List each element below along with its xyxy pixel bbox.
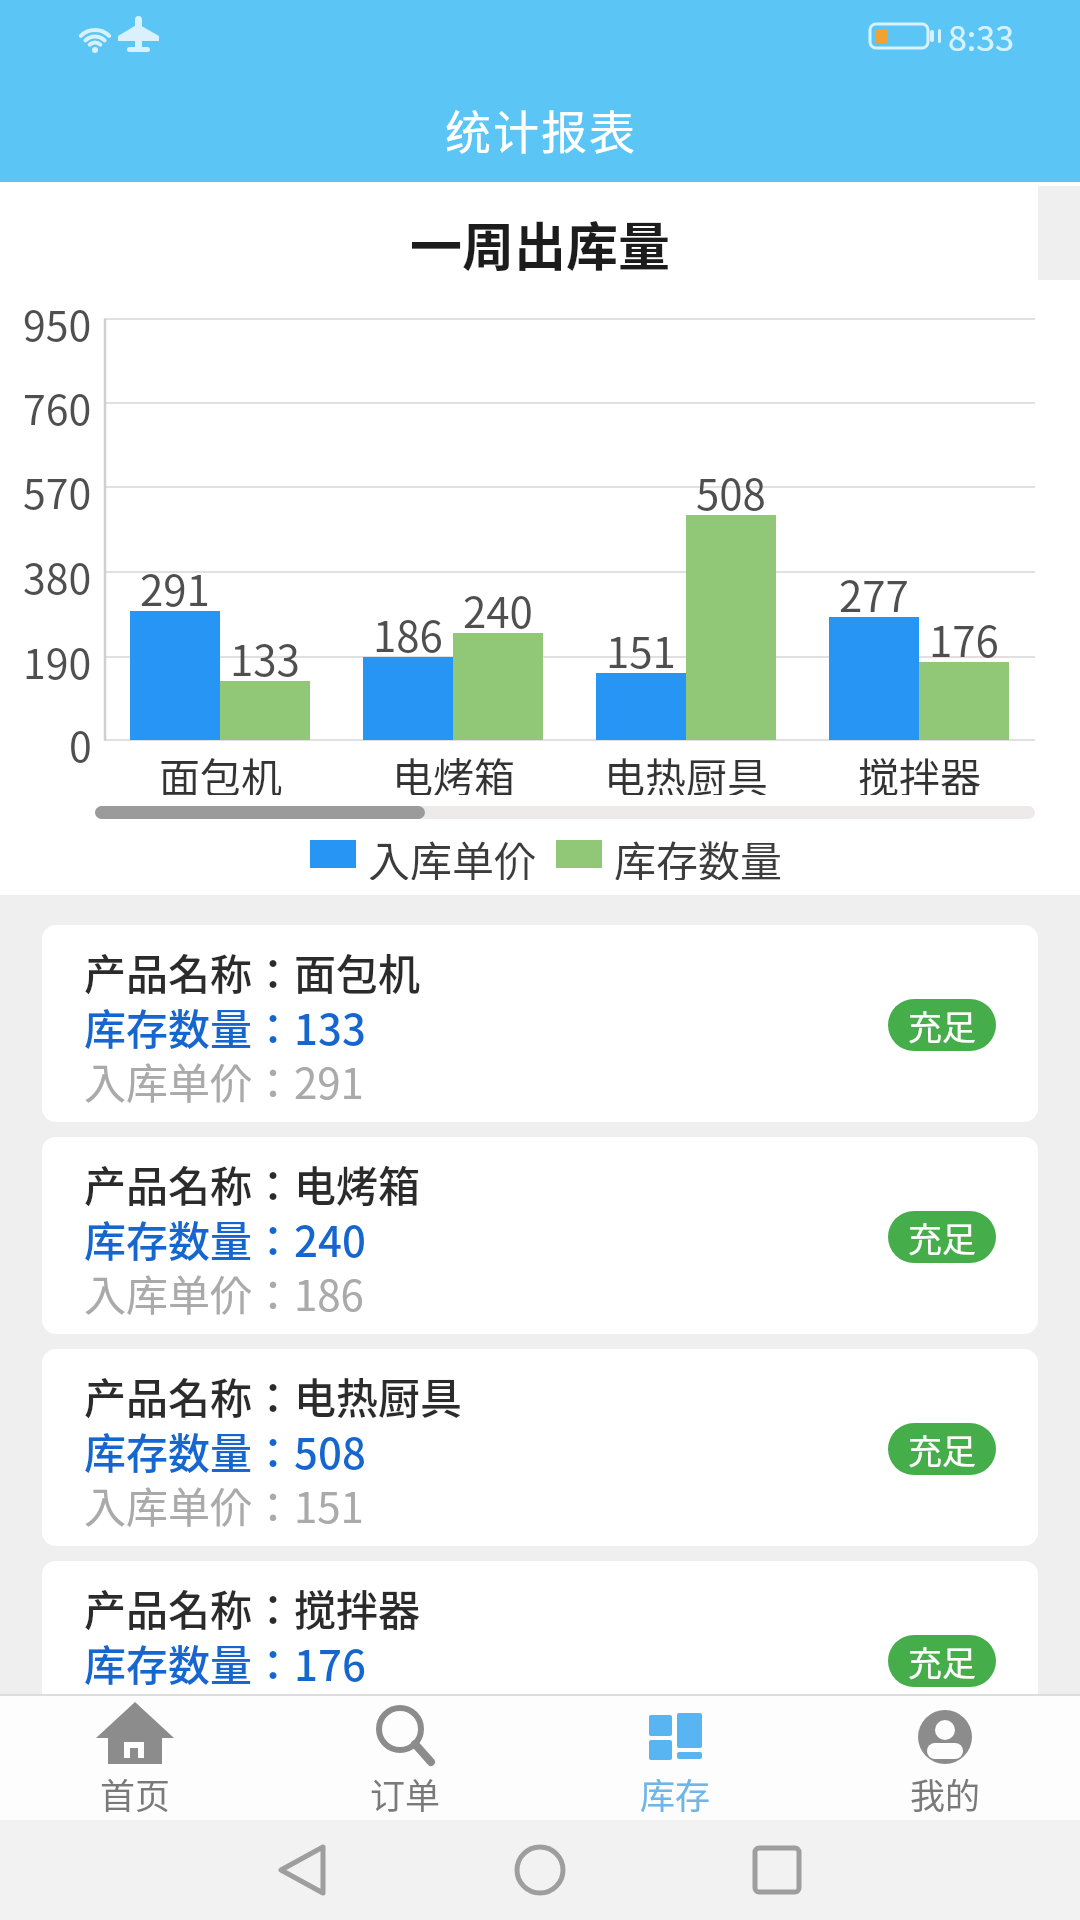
staticText: 产品名称：搅拌器 [84, 1577, 421, 1631]
staticText: 充足 [908, 1001, 976, 1050]
staticText: 库存数量：133 [84, 996, 366, 1050]
staticText: 我的 [910, 1768, 981, 1812]
staticText: 面包机 [159, 745, 282, 795]
staticText: 8:33 [948, 12, 1015, 60]
staticText: 277 [839, 563, 909, 613]
staticText: 760 [23, 377, 92, 429]
staticText: 库存数量：508 [84, 1420, 366, 1474]
staticText: 库存数量 [614, 828, 783, 880]
staticText: 176 [929, 608, 999, 658]
button[interactable]: 产品名称：面包机 [42, 925, 1038, 1122]
staticText: 186 [373, 603, 443, 653]
staticText: 产品名称：电烤箱 [84, 1153, 421, 1207]
staticText: 0 [69, 714, 92, 766]
staticText: 库存数量：240 [84, 1208, 366, 1262]
button[interactable]: 充足 [888, 1423, 996, 1475]
staticText: 充足 [908, 1637, 976, 1686]
staticText: 库存 [640, 1768, 711, 1812]
staticText: 产品名称：面包机 [84, 941, 421, 995]
button[interactable] [0, 1696, 270, 1820]
button[interactable]: 充足 [888, 999, 996, 1051]
staticText: 151 [606, 619, 676, 669]
staticText: 133 [230, 627, 300, 677]
staticText: 入库单价：291 [84, 1050, 364, 1104]
button[interactable]: 产品名称：电烤箱 [42, 1137, 1038, 1334]
staticText: 一周出库量 [410, 206, 671, 274]
staticText: 240 [463, 579, 533, 629]
staticText: 充足 [908, 1425, 976, 1474]
staticText: 508 [696, 461, 766, 511]
staticText: 入库单价：277 [84, 1686, 364, 1740]
button[interactable]: 产品名称：电热厨具 [42, 1349, 1038, 1546]
staticText: 570 [23, 461, 92, 513]
button[interactable] [540, 1696, 810, 1820]
staticText: 入库单价 [368, 828, 537, 880]
button[interactable] [270, 1696, 540, 1820]
staticText: 291 [140, 557, 210, 607]
staticText: 入库单价：151 [84, 1474, 364, 1528]
button[interactable]: 产品名称：搅拌器 [42, 1561, 1038, 1758]
button[interactable] [810, 1696, 1080, 1820]
staticText: 订单 [370, 1768, 441, 1812]
staticText: 首页 [100, 1768, 171, 1812]
staticText: 统计报表 [444, 96, 636, 158]
staticText: 产品名称：电热厨具 [84, 1365, 463, 1419]
button[interactable]: 充足 [888, 1211, 996, 1263]
staticText: 380 [23, 546, 92, 598]
staticText: 入库单价：186 [84, 1262, 364, 1316]
staticText: 搅拌器 [858, 745, 981, 795]
staticText: 950 [23, 293, 92, 345]
staticText: 190 [23, 631, 92, 683]
staticText: 电热厨具 [604, 745, 768, 795]
staticText: 充足 [908, 1213, 976, 1262]
staticText: 电烤箱 [392, 745, 515, 795]
staticText: 库存数量：176 [84, 1632, 366, 1686]
button[interactable]: 充足 [888, 1635, 996, 1687]
